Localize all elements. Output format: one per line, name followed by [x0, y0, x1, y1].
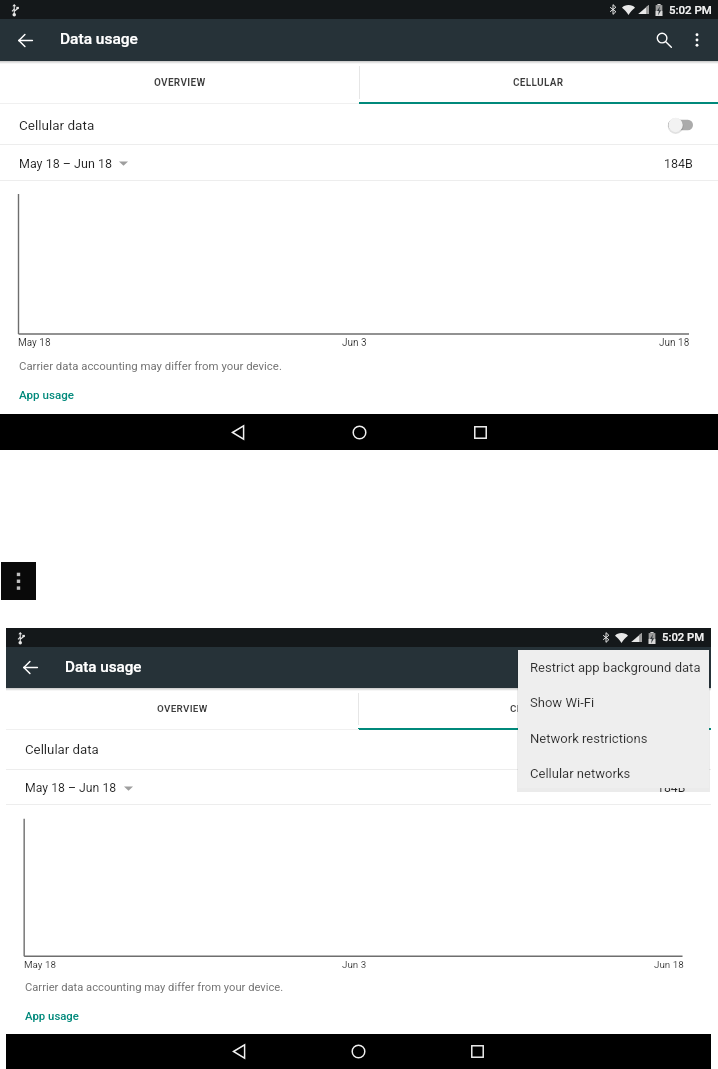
button[interactable]: OVERVIEW: [6, 688, 358, 730]
button[interactable]: Recent apps: [462, 414, 498, 450]
button[interactable]: Navigate up: [14, 651, 47, 684]
button[interactable]: More options: [676, 653, 705, 682]
staticText: Carrier data accounting may differ from …: [19, 359, 282, 372]
button[interactable]: May 18 – Jun 18: [19, 156, 128, 171]
button[interactable]: Cellular data: [0, 104, 718, 145]
button[interactable]: More options: [682, 25, 712, 55]
staticText: Restrict app background data: [530, 660, 701, 675]
staticText: Cellular data: [25, 742, 99, 758]
button[interactable]: Back: [220, 414, 256, 450]
staticText: Jun 18: [659, 337, 690, 349]
staticText: Data usage: [60, 30, 138, 48]
button[interactable]: Search: [646, 22, 682, 58]
staticText: Cellular data: [19, 117, 95, 133]
staticText: CELLULAR: [513, 77, 564, 89]
staticText: Data usage: [65, 658, 142, 676]
staticText: App usage: [25, 1009, 79, 1022]
button[interactable]: Show Wi-Fi: [518, 685, 709, 720]
button[interactable]: May 18 – Jun 18: [25, 781, 133, 795]
staticText: Carrier data accounting may differ from …: [25, 981, 284, 994]
button[interactable]: Recent apps: [460, 1034, 495, 1069]
staticText: 5:02 PM: [669, 3, 712, 16]
staticText: Jun 3: [342, 337, 367, 349]
staticText: May 18 – Jun 18: [19, 156, 112, 171]
staticText: 5:02 PM: [662, 631, 705, 644]
staticText: Show Wi-Fi: [530, 695, 595, 710]
button[interactable]: App usage: [19, 388, 74, 402]
staticText: App usage: [19, 388, 74, 402]
button[interactable]: Home: [341, 1034, 376, 1069]
button[interactable]: More options: [1, 562, 36, 600]
button[interactable]: Back: [222, 1034, 257, 1069]
staticText: 184B: [664, 156, 693, 171]
button[interactable]: Network restrictions: [518, 721, 709, 756]
button[interactable]: CELLULAR: [359, 61, 718, 104]
button[interactable]: CELLULAR: [358, 688, 711, 730]
staticText: Jun 18: [654, 959, 684, 971]
staticText: Jun 3: [342, 959, 367, 971]
button[interactable]: Navigate up: [8, 23, 42, 57]
button[interactable]: Cellular data: [6, 730, 711, 770]
staticText: CELLULAR: [510, 703, 560, 715]
staticText: May 18 – Jun 18: [25, 781, 117, 795]
button[interactable]: Restrict app background data: [518, 650, 709, 685]
button[interactable]: Search: [641, 650, 676, 685]
staticText: May 18: [24, 959, 56, 971]
button[interactable]: Cellular networks: [518, 756, 709, 791]
staticText: Cellular networks: [530, 766, 631, 781]
staticText: May 18: [18, 337, 51, 349]
staticText: OVERVIEW: [154, 77, 206, 89]
staticText: OVERVIEW: [157, 703, 208, 715]
button[interactable]: Home: [341, 414, 377, 450]
button[interactable]: OVERVIEW: [0, 61, 359, 104]
staticText: 184B: [657, 781, 686, 795]
button[interactable]: App usage: [25, 1009, 79, 1022]
staticText: Network restrictions: [530, 731, 648, 746]
